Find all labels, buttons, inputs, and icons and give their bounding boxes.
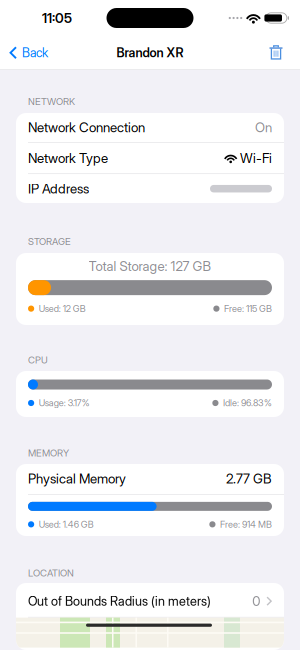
button[interactable]: Delete (261, 36, 291, 69)
button[interactable]: Network Connection (16, 113, 284, 142)
staticText: LOCATION (28, 567, 74, 579)
staticText: Total Storage: 127 GB (88, 258, 211, 274)
staticText: Network Type (28, 150, 108, 166)
staticText: 2.77 GB (226, 471, 272, 487)
staticText: STORAGE (28, 236, 71, 247)
button[interactable]: IP Address (16, 174, 284, 203)
staticText: Physical Memory (28, 471, 126, 487)
staticText: Brandon XR (116, 45, 183, 60)
button[interactable]: Back (0, 36, 56, 69)
staticText: Idle: 96.83% (223, 397, 272, 408)
staticText: 11:05 (42, 10, 72, 26)
staticText: Usage: 3.17% (39, 397, 90, 408)
staticText: Network Connection (28, 119, 145, 135)
staticText: Free: 914 MB (220, 519, 272, 530)
button[interactable]: Network Type (16, 143, 284, 173)
staticText: NETWORK (28, 96, 75, 107)
staticText: Free: 115 GB (224, 303, 272, 314)
staticText: MEMORY (28, 447, 69, 459)
staticText: IP Address (28, 181, 89, 197)
staticText: Used: 1.46 GB (39, 519, 94, 530)
staticText: Wi-Fi (240, 150, 272, 166)
staticText: 0 (252, 593, 260, 609)
staticText: On (255, 119, 272, 135)
staticText: Used: 12 GB (39, 303, 86, 314)
button[interactable]: Out of Bounds Radius (in meters) (16, 585, 284, 617)
staticText: CPU (28, 354, 48, 366)
staticText: Out of Bounds Radius (in meters) (28, 593, 211, 609)
staticText: Back (22, 45, 48, 60)
